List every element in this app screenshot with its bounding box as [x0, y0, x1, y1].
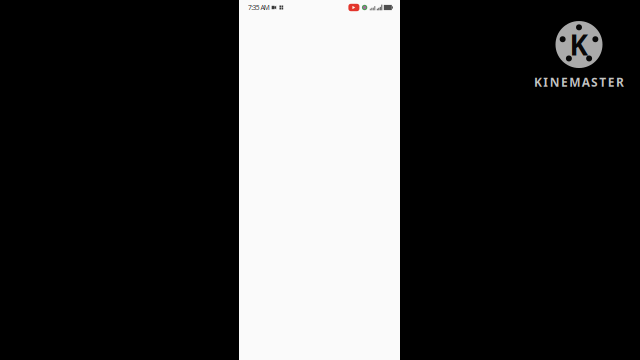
staticText: 7:35 AM [248, 3, 270, 12]
button[interactable]: KineMaster [529, 15, 629, 95]
staticText: KINEMASTER [534, 74, 624, 90]
staticText: K [569, 26, 588, 63]
